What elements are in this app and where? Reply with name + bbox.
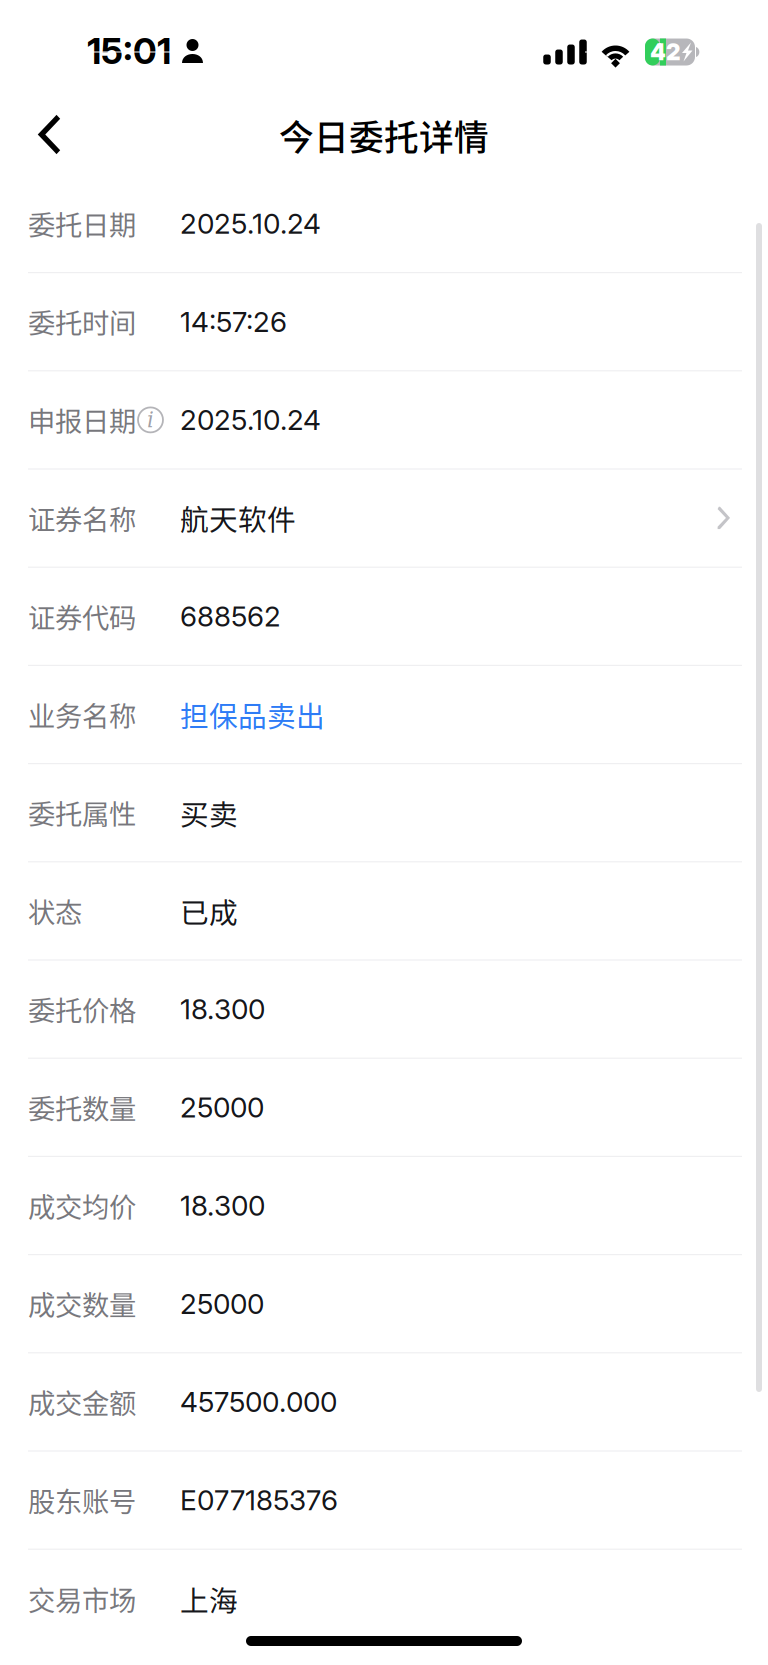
staticText: 状态 [28, 891, 82, 931]
staticText: 委托数量 [28, 1087, 136, 1127]
staticText: 25000 [180, 1287, 264, 1321]
staticText: 委托属性 [28, 793, 136, 832]
staticText: 688562 [180, 599, 281, 633]
staticText: 2025.10.24 [180, 403, 321, 437]
staticText: 成交均价 [28, 1186, 136, 1225]
staticText: 交易市场 [28, 1579, 136, 1619]
staticText: 委托价格 [28, 989, 136, 1029]
staticText: 业务名称 [28, 695, 136, 734]
staticText: 担保品卖出 [180, 694, 325, 735]
staticText: 证券名称 [28, 498, 136, 538]
staticText: 2025.10.24 [180, 207, 321, 240]
staticText: 申报日期 [28, 400, 136, 440]
staticText: 航天软件 [180, 497, 296, 539]
staticText: E077185376 [180, 1483, 338, 1517]
staticText: 委托时间 [28, 302, 136, 341]
staticText: 证券代码 [28, 596, 136, 636]
staticText: i [147, 407, 154, 432]
staticText: 委托日期 [28, 204, 136, 243]
staticText: 14:57:26 [180, 305, 287, 339]
staticText: 15:01 [87, 29, 171, 73]
staticText: 18.300 [180, 992, 265, 1026]
staticText: 457500.000 [180, 1385, 337, 1419]
staticText: 25000 [180, 1090, 264, 1124]
staticText: 成交数量 [28, 1284, 136, 1323]
staticText: 42 [650, 38, 681, 66]
staticText: 上海 [180, 1578, 238, 1620]
staticText: 买卖 [180, 792, 238, 833]
button[interactable]: 返回 [0, 96, 96, 175]
staticText: 今日委托详情 [279, 110, 489, 161]
staticText: 已成 [180, 890, 238, 932]
staticText: 成交金额 [28, 1382, 136, 1422]
staticText: 股东账号 [28, 1480, 136, 1520]
staticText: 18.300 [180, 1189, 265, 1222]
